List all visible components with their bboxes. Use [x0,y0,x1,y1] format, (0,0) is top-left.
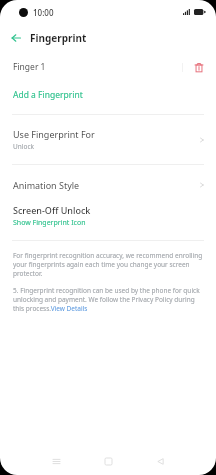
staticText: Unlock [13,142,34,151]
button[interactable]: Back [151,452,169,470]
staticText: 10:00 [33,7,54,18]
button[interactable]: Add a Fingerprint [0,86,216,104]
staticText: For fingerprint recognition accuracy, we… [13,251,204,278]
button[interactable]: Recent apps [47,452,65,470]
button[interactable]: Delete fingerprint [191,60,206,75]
staticText: Animation Style [13,179,199,191]
staticText: Screen-Off Unlock [13,204,91,216]
button[interactable]: Finger 1 [0,57,216,77]
staticText: Finger 1 [13,61,46,73]
staticText: Add a Fingerprint [13,89,83,101]
staticText: Show Fingerprint Icon [13,218,86,228]
button[interactable]: Screen-Off Unlock [0,204,216,228]
staticText: 5. Fingerprint recognition can be used b… [13,286,204,313]
button[interactable]: Back [7,29,25,47]
button[interactable]: Use Fingerprint For [0,123,216,156]
button[interactable]: Animation Style [0,172,216,198]
staticText: Use Fingerprint For [13,128,95,140]
staticText: Fingerprint [30,31,87,45]
button[interactable]: Home [99,452,117,470]
